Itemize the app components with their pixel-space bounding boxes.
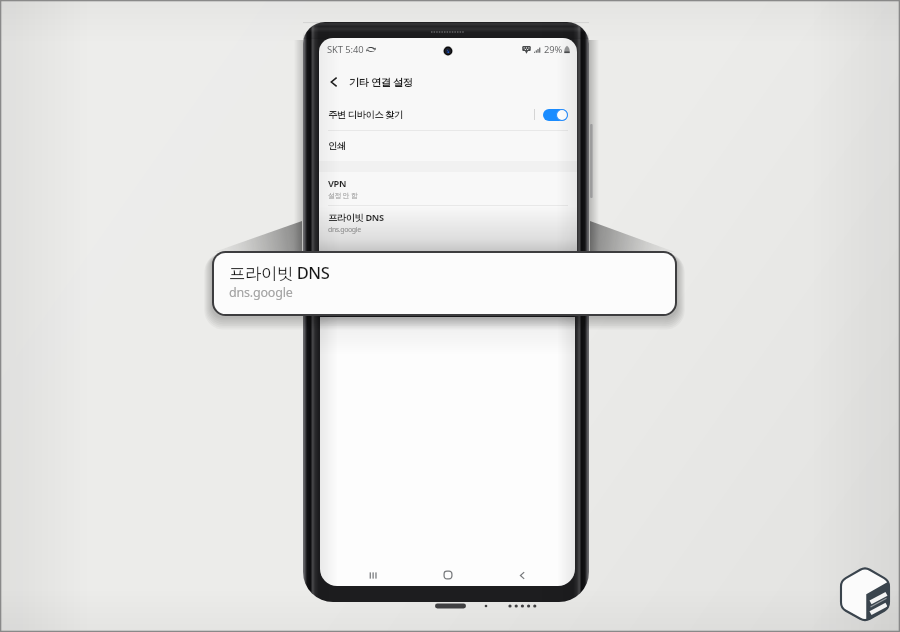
staticText: dns.google xyxy=(328,225,361,235)
button[interactable]: Home xyxy=(410,558,485,586)
button[interactable]: 프라이빗 DNS xyxy=(319,206,577,240)
button[interactable]: 인쇄 xyxy=(319,131,577,161)
button[interactable]: Back xyxy=(485,558,560,586)
button[interactable]: HashTag logo xyxy=(840,565,890,622)
button[interactable]: Back xyxy=(324,72,344,92)
button[interactable]: 프라이빗 DNS xyxy=(214,253,675,314)
button[interactable]: 주변 디바이스 찾기 xyxy=(319,99,577,130)
staticText: 설정 안 함 xyxy=(328,191,358,201)
staticText: SKT 5:40 xyxy=(327,43,364,56)
button[interactable]: VPN xyxy=(319,172,577,205)
button[interactable]: Recent apps xyxy=(335,558,410,586)
staticText: 29% xyxy=(544,43,563,56)
staticText: 기타 연결 설정 xyxy=(349,75,413,89)
button[interactable]: Find nearby devices toggle xyxy=(543,109,568,121)
staticText: VPN xyxy=(328,177,347,190)
staticText: dns.google xyxy=(229,284,293,301)
staticText: 주변 디바이스 찾기 xyxy=(328,108,403,121)
staticText: 인쇄 xyxy=(328,140,346,152)
staticText: 프라이빗 DNS xyxy=(328,211,384,224)
staticText: 프라이빗 DNS xyxy=(229,261,330,284)
